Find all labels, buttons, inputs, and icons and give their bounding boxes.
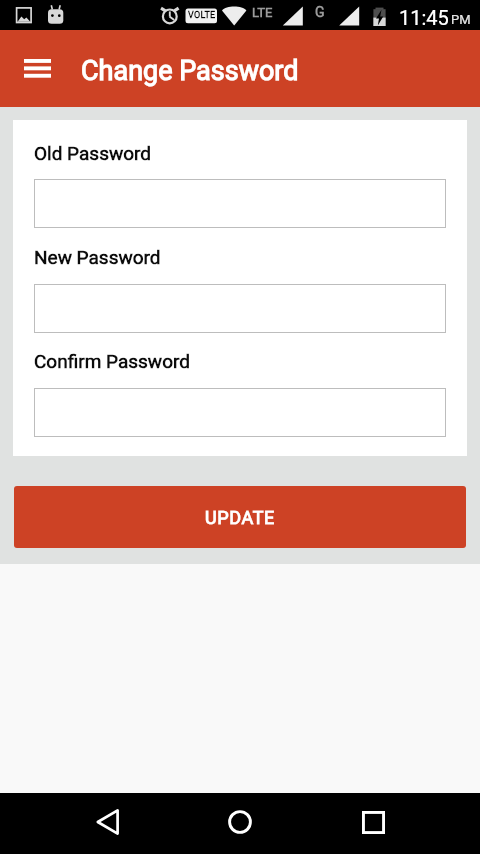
button[interactable]: UPDATE — [14, 486, 466, 548]
button[interactable]: Back — [83, 798, 131, 846]
staticText: 11:45 — [399, 6, 449, 29]
staticText: VOLTE — [188, 10, 216, 21]
button[interactable]: Home — [216, 798, 264, 846]
staticText: PM — [451, 12, 471, 27]
button[interactable] — [34, 284, 446, 333]
staticText: Change Password — [81, 55, 299, 87]
staticText: Old Password — [34, 142, 152, 164]
staticText: UPDATE — [205, 507, 275, 528]
button[interactable] — [34, 388, 446, 437]
staticText: Confirm Password — [34, 350, 190, 372]
staticText: G — [315, 4, 325, 20]
staticText: LTE — [252, 5, 273, 20]
button[interactable]: Recent apps — [349, 798, 397, 846]
button[interactable]: Open navigation menu — [9, 40, 65, 96]
staticText: New Password — [34, 246, 161, 268]
button[interactable] — [34, 179, 446, 228]
